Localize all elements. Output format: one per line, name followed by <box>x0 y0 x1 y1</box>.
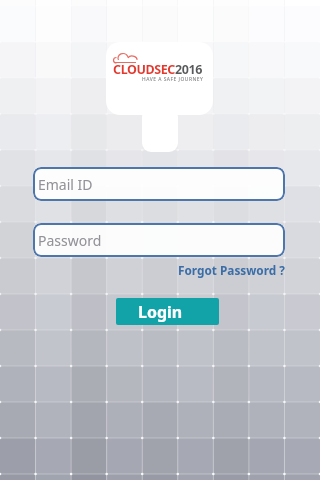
staticText: CLOUDSEC2016 <box>113 61 202 78</box>
staticText: HAVE A SAFE JOURNEY <box>142 76 204 83</box>
staticText: Forgot Password ? <box>178 262 285 278</box>
button[interactable]: Forgot Password ? <box>178 262 285 278</box>
button[interactable]: Email ID <box>33 167 285 201</box>
staticText: Login <box>138 301 183 323</box>
staticText: Password <box>38 231 102 250</box>
staticText: Email ID <box>38 175 93 194</box>
button[interactable]: Password <box>33 223 285 257</box>
button[interactable]: Login <box>116 298 219 325</box>
